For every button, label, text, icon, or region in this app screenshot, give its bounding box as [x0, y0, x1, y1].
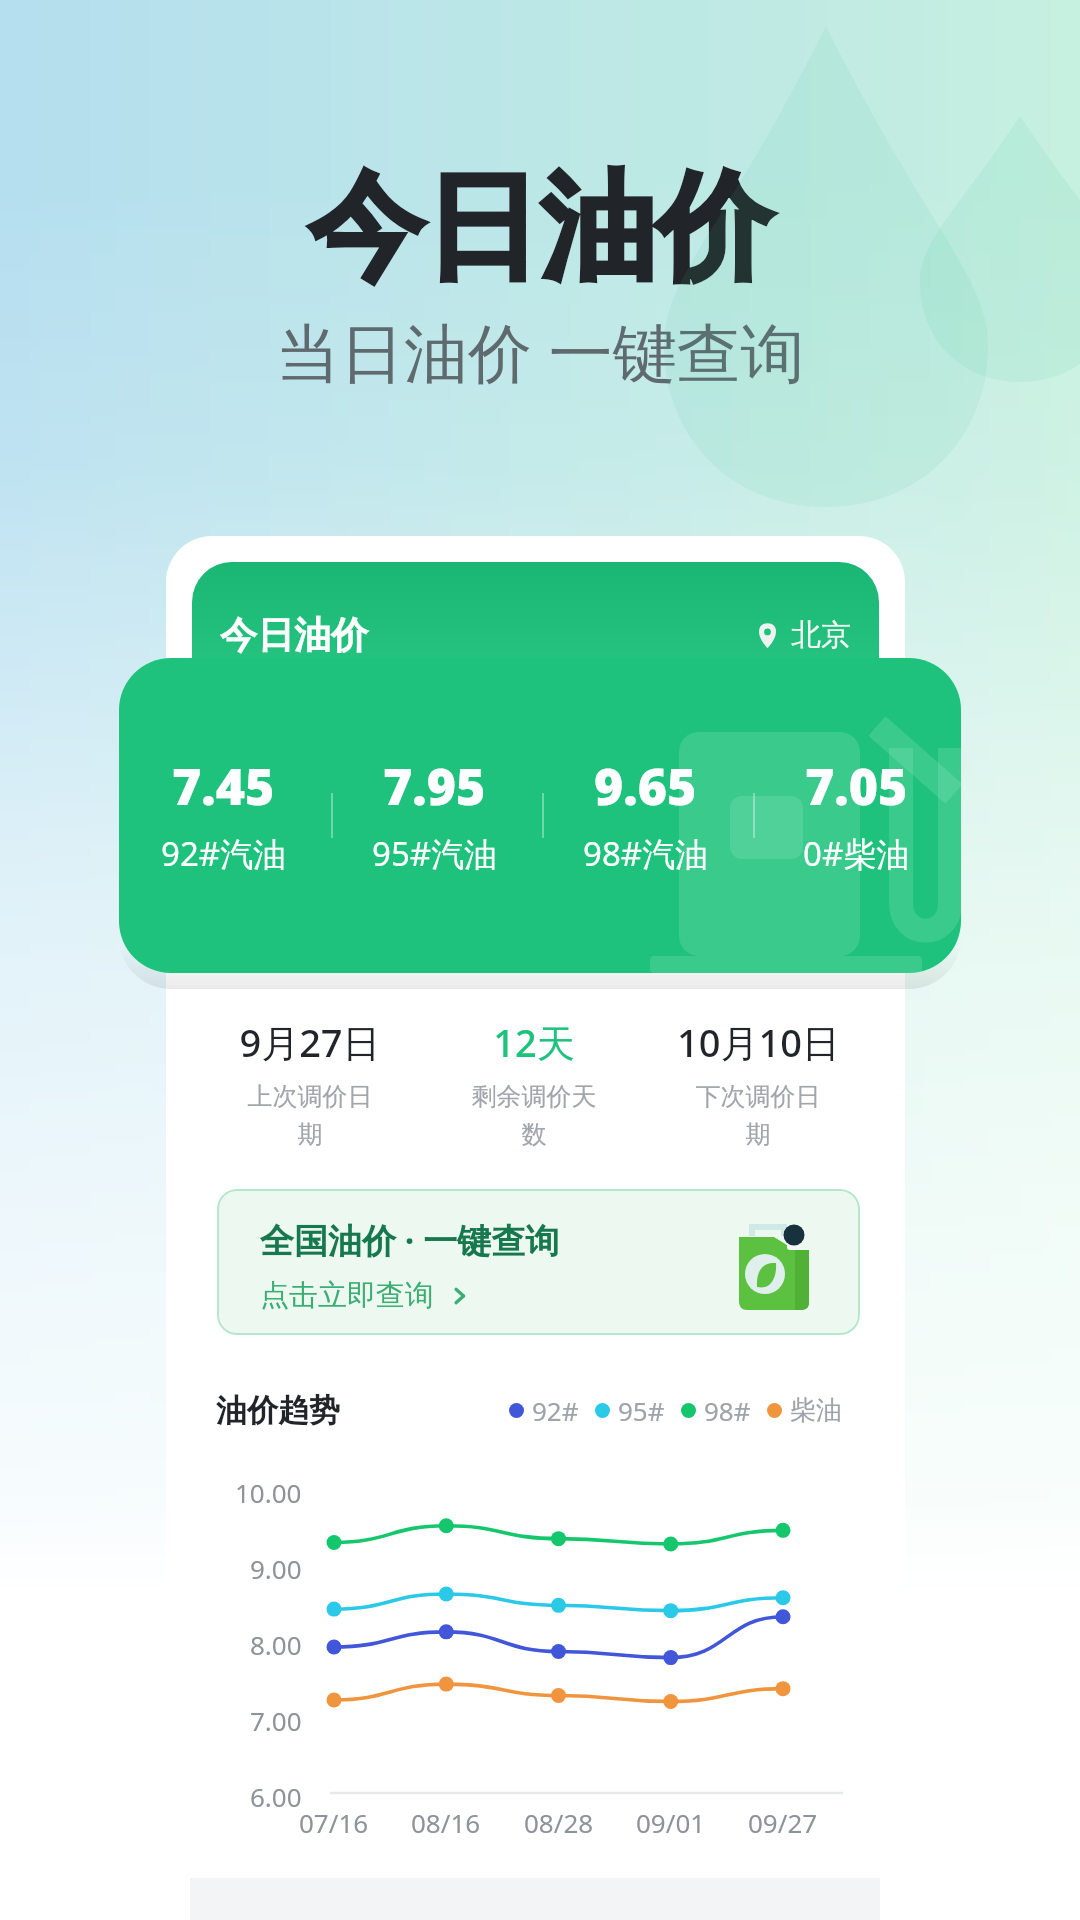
staticText: 98#汽油 [583, 831, 709, 876]
button[interactable]: 7.45 [119, 752, 328, 876]
staticText: 7.00 [250, 1703, 302, 1738]
staticText: 7.05 [805, 752, 908, 820]
button[interactable]: 全国油价 · 一键查询 [217, 1189, 860, 1335]
staticText: 0#柴油 [803, 831, 910, 876]
staticText: 今日油价 [308, 155, 772, 301]
staticText: 柴油 [790, 1394, 842, 1427]
staticText: 08/16 [411, 1805, 481, 1840]
staticText: 上次调价日期 [245, 1081, 375, 1151]
staticText: 7.45 [172, 752, 275, 820]
staticText: 95#汽油 [372, 831, 498, 876]
button[interactable]: 柴油 [767, 1388, 842, 1433]
staticText: 北京 [791, 616, 851, 654]
staticText: 98# [704, 1393, 751, 1428]
staticText: 92# [532, 1393, 579, 1428]
staticText: 07/16 [299, 1805, 369, 1840]
staticText: 当日油价 一键查询 [276, 308, 805, 395]
staticText: 油价趋势 [216, 1391, 340, 1430]
staticText: 7.95 [383, 752, 486, 820]
staticText: 全国油价 · 一键查询 [260, 1217, 560, 1263]
staticText: 9月27日 [239, 1016, 381, 1068]
staticText: 9.00 [250, 1551, 302, 1586]
staticText: 10.00 [235, 1475, 302, 1510]
staticText: 12天 [493, 1016, 575, 1068]
button[interactable]: 92# [509, 1387, 579, 1434]
staticText: 下次调价日期 [693, 1081, 823, 1151]
staticText: 8.00 [250, 1627, 302, 1662]
staticText: 92#汽油 [161, 831, 287, 876]
button[interactable]: 切换城市 北京 [748, 610, 857, 660]
staticText: 09/27 [748, 1805, 818, 1840]
button[interactable]: 9月27日 [198, 1016, 422, 1151]
staticText: 剩余调价天数 [469, 1081, 599, 1151]
button[interactable]: 12天 [422, 1016, 646, 1151]
staticText: 95# [618, 1393, 665, 1428]
button[interactable]: 95# [595, 1387, 665, 1434]
staticText: 08/28 [524, 1805, 594, 1840]
staticText: 09/01 [636, 1805, 706, 1840]
button[interactable]: 7.05 [752, 752, 961, 876]
button[interactable]: 98# [681, 1387, 751, 1434]
staticText: 点击立即查询 [260, 1277, 434, 1314]
staticText: 10月10日 [677, 1016, 840, 1068]
button[interactable]: 7.95 [330, 752, 539, 876]
staticText: 9.65 [594, 752, 697, 820]
staticText: 6.00 [250, 1779, 302, 1814]
button[interactable]: 10月10日 [646, 1016, 870, 1151]
button[interactable]: 9.65 [541, 752, 750, 876]
staticText: 今日油价 [220, 612, 368, 659]
